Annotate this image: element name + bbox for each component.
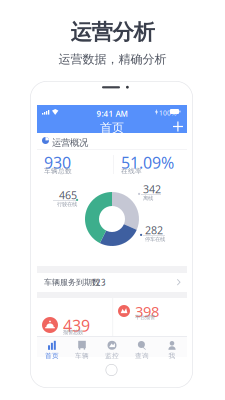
button[interactable]: 398: [118, 304, 182, 321]
staticText: 监控: [105, 352, 119, 360]
staticText: 首页: [100, 120, 124, 135]
staticText: 查询: [135, 352, 149, 360]
button[interactable]: 车辆服务到期数：: [37, 273, 187, 292]
staticText: 282: [145, 223, 163, 237]
staticText: 报警总数: [63, 329, 83, 336]
button[interactable]: 439: [42, 317, 112, 336]
staticText: 我: [168, 352, 175, 360]
staticText: 439: [63, 315, 90, 336]
button[interactable]: 首页: [37, 338, 67, 359]
button[interactable]: 查询: [127, 338, 157, 359]
staticText: 车辆: [75, 352, 89, 360]
staticText: 在线率: [121, 167, 142, 175]
staticText: 930: [44, 152, 71, 173]
staticText: 运营数据，精确分析: [58, 52, 166, 67]
button[interactable]: 监控: [97, 338, 127, 359]
button[interactable]: 我: [157, 338, 187, 359]
staticText: 首页: [45, 352, 59, 360]
staticText: 运营分析: [70, 19, 154, 45]
staticText: 平台报警: [135, 314, 155, 321]
staticText: 运营概况: [52, 137, 88, 148]
staticText: 停车在线: [145, 236, 165, 243]
staticText: 9:41 AM: [96, 108, 127, 119]
staticText: 离线: [143, 195, 153, 202]
staticText: 100%: [159, 109, 177, 117]
staticText: 342: [143, 182, 161, 196]
staticText: 车辆总数: [44, 167, 72, 175]
button[interactable]: 车辆: [67, 338, 97, 359]
staticText: 123: [91, 277, 106, 288]
staticText: 行驶在线: [57, 201, 77, 208]
staticText: 398: [135, 301, 159, 321]
button[interactable]: 添加: [171, 119, 185, 133]
staticText: 51.09%: [121, 152, 174, 173]
staticText: 465: [59, 188, 77, 202]
staticText: 车辆服务到期数：: [44, 277, 108, 287]
